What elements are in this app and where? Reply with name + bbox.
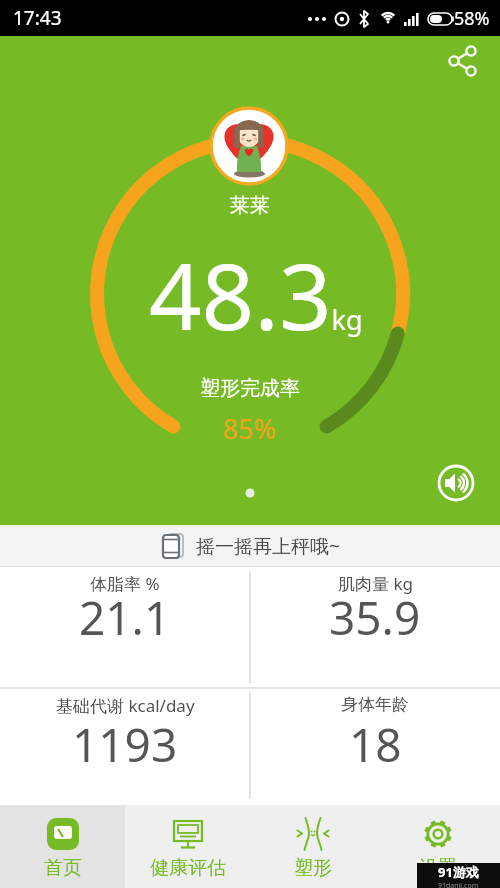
staticText: 健康评估: [150, 856, 226, 880]
button[interactable]: [437, 464, 475, 502]
staticText: 莱莱: [230, 193, 270, 218]
staticText: 35.9: [329, 586, 421, 649]
staticText: 首页: [44, 856, 82, 880]
staticText: 17:43: [13, 5, 62, 31]
staticText: 58%: [454, 6, 490, 31]
button[interactable]: 健康评估: [125, 805, 250, 888]
staticText: 身体年龄: [341, 694, 409, 715]
staticText: 18: [349, 713, 402, 776]
staticText: 91游戏: [438, 863, 479, 881]
button[interactable]: 首页: [0, 805, 125, 888]
button[interactable]: 塑形: [250, 805, 375, 888]
staticText: 塑形: [294, 856, 332, 880]
button[interactable]: 肌肉量 kg: [250, 567, 500, 688]
button[interactable]: [448, 46, 478, 76]
staticText: 设置: [419, 856, 457, 880]
staticText: 48.3kg: [149, 232, 363, 357]
button[interactable]: 身体年龄: [250, 688, 500, 805]
button[interactable]: 基础代谢 kcal/day: [0, 688, 250, 805]
staticText: 塑形完成率: [200, 376, 300, 401]
staticText: 91danji.com: [438, 881, 479, 888]
button[interactable]: 摇一摇再上秤哦~: [160, 533, 340, 559]
staticText: 基础代谢 kcal/day: [56, 694, 195, 717]
staticText: 85%: [223, 410, 277, 447]
staticText: 摇一摇再上秤哦~: [196, 533, 340, 559]
staticText: 1193: [72, 713, 178, 776]
staticText: 肌肉量 kg: [338, 572, 413, 595]
staticText: 21.1: [79, 586, 171, 649]
button[interactable]: 体脂率 %: [0, 567, 250, 688]
staticText: 体脂率 %: [90, 572, 160, 595]
button[interactable]: 设置: [375, 805, 500, 888]
